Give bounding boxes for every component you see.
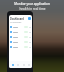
button[interactable]: Profile xyxy=(28,17,31,20)
button[interactable]: Dashboard xyxy=(9,16,32,21)
staticText: All services xyxy=(10,21,22,24)
staticText: Monitor your application xyxy=(14,2,50,6)
button[interactable] xyxy=(9,36,32,38)
button[interactable] xyxy=(9,46,32,48)
button[interactable] xyxy=(9,31,32,33)
button[interactable]: Tab 4 xyxy=(26,61,31,68)
button[interactable] xyxy=(9,41,32,43)
button[interactable]: Tab 3 xyxy=(21,61,26,68)
staticText: Dashboard xyxy=(10,17,25,21)
staticText: health in real time xyxy=(19,7,46,11)
button[interactable]: Tab 1 xyxy=(10,61,15,68)
button[interactable] xyxy=(9,26,32,28)
button[interactable]: Tab 2 xyxy=(15,61,20,68)
